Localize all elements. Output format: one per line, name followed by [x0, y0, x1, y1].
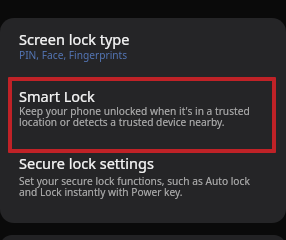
staticText: Secure lock settings — [19, 153, 154, 173]
button[interactable]: Secure lock settings — [0, 152, 286, 223]
button[interactable]: Screen lock type — [0, 18, 286, 70]
staticText: Keep your phone unlocked when it's in a … — [19, 104, 250, 129]
staticText: Set your secure lock functions, such as … — [19, 174, 250, 199]
staticText: Screen lock type — [19, 29, 130, 49]
staticText: PIN, Face, Fingerprints — [19, 48, 128, 62]
staticText: Smart Lock — [19, 86, 95, 106]
button[interactable]: Smart Lock — [0, 70, 286, 152]
